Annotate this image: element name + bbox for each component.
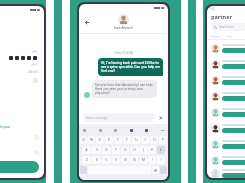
button[interactable] xyxy=(207,120,245,136)
staticText: رقم xyxy=(32,49,38,53)
staticText: Sara Ahmed xyxy=(114,26,133,30)
staticText: back part in your xyxy=(0,125,11,129)
staticText: E xyxy=(99,138,101,142)
button[interactable] xyxy=(222,48,245,53)
button[interactable]: Key tool 5 xyxy=(160,128,165,133)
staticText: O xyxy=(153,138,156,142)
button[interactable] xyxy=(207,56,245,72)
button[interactable] xyxy=(222,128,245,133)
button[interactable]: L xyxy=(157,146,165,154)
button[interactable]: Send xyxy=(157,114,164,121)
staticText: U xyxy=(135,138,138,142)
button[interactable]: Option xyxy=(34,150,39,155)
button[interactable]: Sorry to hear that! Absolutely I can hel… xyxy=(92,80,157,98)
staticText: T xyxy=(117,138,119,142)
staticText: L xyxy=(160,148,162,152)
button[interactable]: B xyxy=(121,156,129,164)
staticText: ? xyxy=(160,158,162,162)
button[interactable] xyxy=(222,64,245,69)
button[interactable]: U xyxy=(132,136,140,144)
staticText: 2.8 sec xyxy=(28,70,38,74)
button[interactable]: N xyxy=(130,156,138,164)
staticText: V xyxy=(115,158,117,162)
button[interactable] xyxy=(207,72,245,88)
staticText: 9:41 xyxy=(210,7,216,11)
button[interactable]: C xyxy=(102,156,111,164)
staticText: I xyxy=(144,138,146,142)
staticText: R xyxy=(108,138,110,142)
button[interactable]: Key tool 4 xyxy=(144,128,149,133)
button[interactable]: ? xyxy=(157,156,165,164)
button[interactable]: Search here xyxy=(211,23,245,31)
staticText: H xyxy=(133,148,136,152)
button[interactable]: K xyxy=(148,146,156,154)
button[interactable] xyxy=(222,173,245,178)
button[interactable]: D xyxy=(102,146,111,154)
button[interactable]: W xyxy=(88,136,95,144)
staticText: TYPE xyxy=(226,34,232,37)
button[interactable]: Back xyxy=(83,18,91,26)
button[interactable]: Y xyxy=(123,136,131,144)
button[interactable] xyxy=(207,152,245,168)
button[interactable] xyxy=(152,166,159,174)
staticText: D xyxy=(105,148,108,152)
button[interactable]: H xyxy=(130,146,138,154)
button[interactable] xyxy=(222,144,245,149)
button[interactable] xyxy=(222,160,245,165)
button[interactable] xyxy=(222,96,245,101)
button[interactable]: O xyxy=(150,136,158,144)
staticText: X xyxy=(96,158,98,162)
button[interactable]: X xyxy=(92,156,101,164)
button[interactable]: Refresh xyxy=(33,78,38,83)
button[interactable] xyxy=(207,40,245,56)
staticText: Z xyxy=(86,158,88,162)
staticText: B xyxy=(124,158,127,162)
button[interactable] xyxy=(207,104,245,120)
staticText: DOCTOR xyxy=(211,34,221,37)
button[interactable]: I xyxy=(141,136,149,144)
staticText: Today 10:24 AM xyxy=(114,51,134,55)
staticText: C xyxy=(105,158,108,162)
button[interactable]: V xyxy=(112,156,120,164)
button[interactable]: Z xyxy=(82,156,91,164)
button[interactable]: Key tool 0 xyxy=(82,128,87,133)
button[interactable]: R xyxy=(105,136,113,144)
button[interactable]: Option xyxy=(34,135,39,140)
button[interactable]: ! xyxy=(148,156,156,164)
staticText: Sorry to hear that! Absolutely I can hel… xyxy=(95,83,154,95)
button[interactable]: P xyxy=(159,136,167,144)
button[interactable]: Key tool 2 xyxy=(113,128,118,133)
staticText: Search here xyxy=(219,25,234,29)
button[interactable]: Key tool 3 xyxy=(129,128,134,133)
staticText: Enter a message xyxy=(86,116,108,120)
button[interactable]: Key tool 1 xyxy=(98,128,103,133)
button[interactable]: Enter a message xyxy=(83,113,155,122)
button[interactable]: Q xyxy=(80,136,87,144)
button[interactable]: S xyxy=(92,146,101,154)
staticText: S xyxy=(96,148,98,152)
button[interactable] xyxy=(207,168,245,178)
staticText: K xyxy=(151,148,153,152)
staticText: ! xyxy=(152,158,153,162)
button[interactable]: J xyxy=(139,146,147,154)
staticText: P xyxy=(162,138,164,142)
button[interactable]: T xyxy=(114,136,122,144)
button[interactable] xyxy=(222,80,245,85)
button[interactable] xyxy=(207,88,245,104)
button[interactable]: E xyxy=(96,136,104,144)
button[interactable]: F xyxy=(112,146,120,154)
staticText: J xyxy=(143,148,144,152)
button[interactable]: G xyxy=(121,146,129,154)
button[interactable] xyxy=(0,161,39,173)
button[interactable]: Hi, I'm having back pain and I'd like to… xyxy=(98,58,163,76)
button[interactable]: A xyxy=(82,146,91,154)
button[interactable] xyxy=(222,112,245,117)
staticText: G xyxy=(124,148,127,152)
staticText: Y xyxy=(126,138,128,142)
button[interactable]: M xyxy=(139,156,147,164)
staticText: N xyxy=(133,158,136,162)
button[interactable] xyxy=(207,136,245,152)
